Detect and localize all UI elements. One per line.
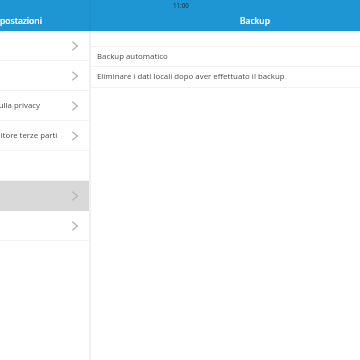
staticText: Impostazioni: [0, 15, 42, 27]
staticText: 11:00: [173, 1, 189, 9]
button[interactable]: Account Google: [0, 211, 89, 241]
staticText: Licenze fornitore terze parti: [0, 130, 58, 141]
staticText: Backup automatico: [97, 51, 168, 62]
button[interactable]: Licenze fornitore terze parti: [0, 121, 89, 151]
staticText: Informativa sulla privacy: [0, 100, 40, 111]
staticText: Backup: [240, 15, 270, 27]
button[interactable]: Eliminare i dati locali dopo aver effett…: [89, 67, 360, 88]
button[interactable]: Notifiche: [0, 61, 89, 91]
button[interactable]: Generale: [0, 31, 89, 61]
button[interactable]: Backup automatico: [89, 47, 360, 67]
staticText: Eliminare i dati locali dopo aver effett…: [97, 71, 285, 82]
button[interactable]: Informativa sulla privacy: [0, 91, 89, 121]
